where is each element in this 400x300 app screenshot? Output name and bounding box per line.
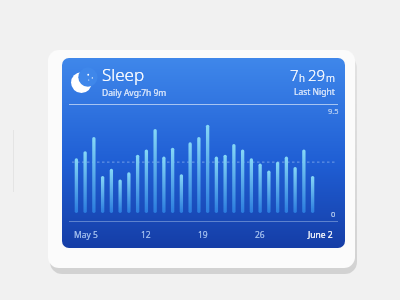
staticText: Last Night [294, 86, 335, 98]
staticText: m [326, 71, 335, 85]
staticText: Sleep [102, 63, 145, 86]
staticText: 9.5 [328, 106, 339, 116]
staticText: 26 [255, 229, 265, 241]
staticText: h [299, 71, 305, 85]
staticText: May 5 [74, 229, 98, 241]
staticText: 29 [308, 65, 326, 85]
staticText: 0 [331, 209, 336, 219]
staticText: 12 [141, 229, 151, 241]
staticText: June 2 [308, 229, 333, 241]
staticText: 7 [290, 65, 299, 85]
other: Sleep [70, 68, 96, 94]
button[interactable]: Sleep [62, 58, 345, 248]
staticText: 19 [198, 229, 208, 241]
staticText: Daily Avg:7h 9m [102, 87, 167, 99]
